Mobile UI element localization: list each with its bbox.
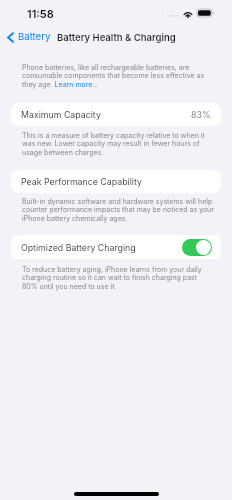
button[interactable]: Optimized Battery Charging [11,235,221,259]
button[interactable]: Optimized Battery Charging toggle [182,239,212,256]
staticText: 11:58 [27,7,54,20]
staticText: Maximum Capacity [21,109,101,120]
staticText: Phone batteries, like all rechargeable b… [22,63,214,89]
staticText: Built-in dynamic software and hardware s… [22,197,214,223]
button[interactable]: Peak Performance Capability [11,170,221,193]
staticText: Battery [18,31,51,43]
staticText: Battery Health & Charging [57,32,176,43]
staticText: Peak Performance Capability [21,176,142,187]
staticText: 83% [191,109,211,120]
button[interactable]: Maximum Capacity [11,103,221,126]
button[interactable]: Battery [4,29,54,45]
staticText: This is a measure of battery capacity re… [22,131,214,157]
staticText: To reduce battery aging, iPhone learns f… [22,265,214,291]
staticText: Optimized Battery Charging [21,242,136,253]
